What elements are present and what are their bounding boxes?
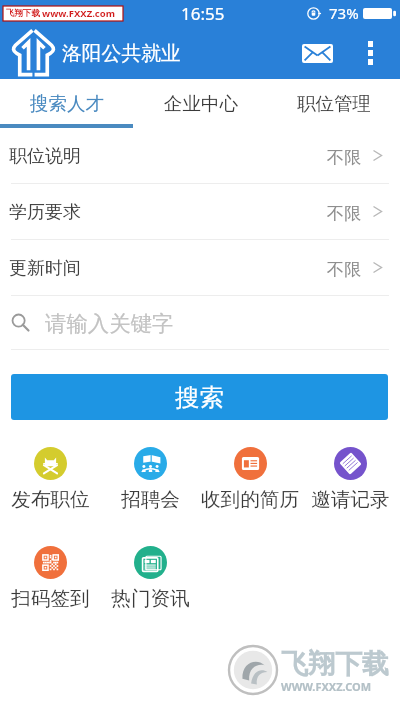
- staticText: 职位管理: [297, 92, 371, 115]
- staticText: 收到的简历: [201, 487, 299, 512]
- staticText: WWW.FXXZ.COM: [281, 679, 372, 694]
- staticText: 企业中心: [164, 92, 238, 115]
- button[interactable]: 招聘会: [100, 440, 200, 539]
- staticText: 学历要求: [9, 201, 81, 224]
- button[interactable]: 搜索: [11, 374, 388, 420]
- button[interactable]: More options: [354, 37, 386, 69]
- staticText: 不限: [327, 258, 362, 280]
- button[interactable]: Messages: [295, 31, 339, 75]
- staticText: www.FXXZ.com: [42, 7, 115, 20]
- staticText: 搜索人才: [30, 92, 104, 115]
- staticText: 职位说明: [9, 145, 81, 168]
- button[interactable]: 扫码签到: [0, 539, 100, 638]
- button[interactable]: 热门资讯: [100, 539, 200, 638]
- staticText: 洛阳公共就业: [62, 41, 181, 66]
- button[interactable]: 搜索人才: [0, 79, 134, 128]
- staticText: 更新时间: [9, 257, 81, 280]
- staticText: 扫码签到: [11, 586, 90, 611]
- staticText: 请输入关键字: [45, 310, 174, 337]
- button[interactable]: 企业中心: [134, 79, 267, 128]
- button[interactable]: 职位管理: [267, 79, 400, 128]
- staticText: 发布职位: [11, 487, 90, 512]
- staticText: 不限: [327, 202, 362, 224]
- staticText: 不限: [327, 146, 362, 168]
- staticText: 搜索: [175, 382, 224, 413]
- staticText: 73%: [329, 3, 359, 23]
- staticText: 邀请记录: [311, 487, 390, 512]
- button[interactable]: 更新时间: [0, 240, 400, 295]
- button[interactable]: 职位说明: [0, 128, 400, 183]
- staticText: 热门资讯: [111, 586, 190, 611]
- staticText: 16:55: [181, 2, 225, 25]
- staticText: 招聘会: [121, 487, 180, 512]
- staticText: 飞翔下载: [6, 8, 40, 19]
- staticText: 飞翔下载: [281, 647, 389, 681]
- button[interactable]: 收到的简历: [200, 440, 300, 539]
- button[interactable]: 学历要求: [0, 184, 400, 239]
- button[interactable]: 邀请记录: [300, 440, 400, 539]
- button[interactable]: 发布职位: [0, 440, 100, 539]
